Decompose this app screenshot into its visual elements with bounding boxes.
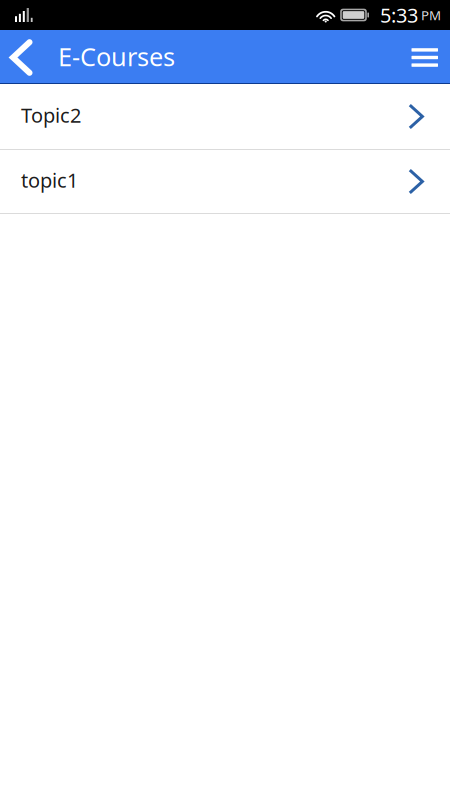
staticText: PM: [418, 6, 441, 24]
staticText: E-Courses: [58, 40, 175, 73]
staticText: 5:33: [380, 2, 418, 28]
button[interactable]: Menu: [399, 30, 450, 83]
button[interactable]: Back: [0, 30, 58, 83]
button[interactable]: topic1: [0, 150, 450, 213]
staticText: Topic2: [21, 102, 81, 128]
button[interactable]: Topic2: [0, 84, 450, 149]
staticText: topic1: [21, 167, 78, 193]
